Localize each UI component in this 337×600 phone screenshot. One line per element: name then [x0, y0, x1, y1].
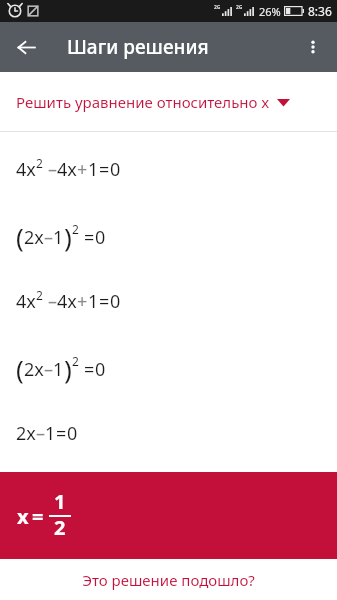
staticText: 0 — [95, 357, 106, 382]
staticText: 2 — [72, 221, 79, 237]
staticText: 2x — [16, 421, 36, 446]
staticText: 4x — [16, 289, 36, 314]
staticText: = — [99, 289, 110, 314]
staticText: x — [17, 503, 29, 530]
staticText: ) — [64, 219, 72, 254]
staticText: – — [48, 289, 57, 314]
staticText: 1 — [53, 357, 64, 382]
staticText: 2 — [54, 514, 66, 541]
staticText: 0 — [67, 421, 78, 446]
staticText: 1 — [88, 157, 99, 182]
button[interactable]: Back — [4, 25, 48, 69]
button[interactable]: More options — [291, 25, 335, 69]
staticText: 4x — [57, 289, 77, 314]
staticText: 4x — [16, 157, 36, 182]
staticText: Это решение подошло? — [82, 570, 255, 590]
staticText: = — [32, 503, 44, 530]
staticText: 26% — [259, 4, 281, 19]
staticText: ) — [64, 351, 72, 386]
staticText: = — [84, 357, 95, 382]
staticText: 0 — [95, 225, 106, 250]
staticText: – — [36, 421, 45, 446]
staticText: + — [77, 157, 88, 182]
staticText: Шаги решения — [67, 34, 209, 60]
button[interactable]: x — [0, 472, 337, 559]
staticText: = — [99, 157, 110, 182]
staticText: 0 — [110, 157, 121, 182]
staticText: = — [56, 421, 67, 446]
button[interactable]: Решить уравнение относительно x — [0, 72, 337, 131]
staticText: ( — [16, 351, 24, 386]
staticText: 1 — [54, 488, 66, 515]
staticText: 2x — [24, 357, 44, 382]
staticText: – — [44, 225, 53, 250]
staticText: Решить уравнение относительно x — [16, 92, 270, 112]
staticText: 1 — [53, 225, 64, 250]
staticText: 2G — [214, 4, 221, 11]
staticText: – — [44, 357, 53, 382]
staticText: 1 — [45, 421, 56, 446]
staticText: 8:36 — [308, 3, 332, 19]
staticText: = — [84, 225, 95, 250]
staticText: 2x — [24, 225, 44, 250]
button[interactable]: Это решение подошло? — [0, 570, 337, 590]
staticText: ( — [16, 219, 24, 254]
staticText: 2 — [72, 353, 79, 369]
staticText: 0 — [110, 289, 121, 314]
staticText: + — [77, 289, 88, 314]
staticText: 4x — [57, 157, 77, 182]
staticText: 2 — [36, 155, 43, 171]
staticText: – — [48, 157, 57, 182]
staticText: 1 — [88, 289, 99, 314]
staticText: 2G — [236, 4, 243, 11]
staticText: 2 — [36, 287, 43, 303]
